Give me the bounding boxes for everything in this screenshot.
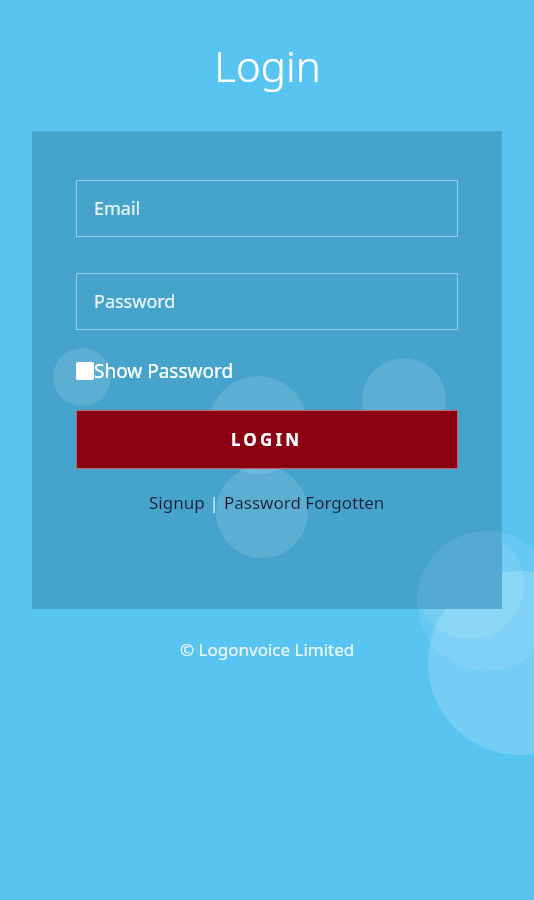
staticText: © Logonvoice Limited xyxy=(180,638,355,661)
staticText: Show Password xyxy=(94,358,234,384)
button[interactable]: Signup xyxy=(149,491,205,514)
staticText: | xyxy=(205,491,224,514)
button[interactable]: LOGIN xyxy=(76,410,458,469)
staticText: Signup xyxy=(149,491,205,514)
button[interactable]: Show Password xyxy=(76,354,234,388)
button[interactable]: Password Forgotten xyxy=(224,491,385,514)
button[interactable]: Password xyxy=(76,273,458,330)
button[interactable]: Email xyxy=(76,180,458,237)
staticText: Password xyxy=(94,289,176,314)
staticText: Email xyxy=(94,196,141,221)
staticText: Login xyxy=(214,37,321,94)
staticText: LOGIN xyxy=(231,428,303,451)
staticText: Password Forgotten xyxy=(224,491,385,514)
